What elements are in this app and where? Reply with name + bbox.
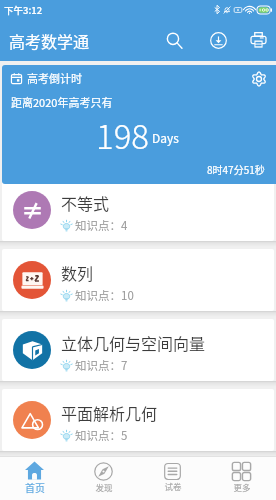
staticText: 知识点：5 <box>75 427 128 444</box>
button[interactable]: Download <box>196 19 240 61</box>
button[interactable]: 不等式 <box>2 179 274 241</box>
button[interactable]: 试卷 <box>138 457 207 500</box>
staticText: 下午3:12 <box>4 3 43 17</box>
staticText: 高考倒计时 <box>27 70 82 86</box>
staticText: 距离2020年高考只有 <box>11 94 113 110</box>
button[interactable]: 平面解析几何 <box>2 389 274 451</box>
button[interactable]: 立体几何与空间向量 <box>2 319 274 381</box>
staticText: 高考数学通 <box>9 29 90 52</box>
staticText: 不等式 <box>61 191 110 214</box>
staticText: 发现 <box>95 481 113 493</box>
staticText: 知识点：4 <box>75 217 128 234</box>
staticText: 试卷 <box>164 480 182 492</box>
staticText: 立体几何与空间向量 <box>61 331 206 354</box>
staticText: 首页 <box>25 480 45 494</box>
button[interactable]: 高考倒计时 <box>2 65 276 184</box>
staticText: 198 <box>96 111 149 159</box>
staticText: Days <box>152 129 179 146</box>
button[interactable]: 数列 <box>2 249 274 311</box>
staticText: 数列 <box>61 261 94 284</box>
button[interactable]: Print <box>240 19 276 61</box>
staticText: 8时47分51秒 <box>207 162 265 176</box>
button[interactable]: 发现 <box>69 457 138 500</box>
staticText: 知识点：7 <box>75 357 128 374</box>
staticText: 更多 <box>233 481 251 493</box>
button[interactable]: Search <box>152 19 196 61</box>
button[interactable]: 更多 <box>207 457 276 500</box>
button[interactable]: 首页 <box>0 457 69 500</box>
button[interactable]: Settings <box>250 70 268 88</box>
staticText: 知识点：10 <box>75 287 134 304</box>
staticText: 平面解析几何 <box>61 401 158 424</box>
